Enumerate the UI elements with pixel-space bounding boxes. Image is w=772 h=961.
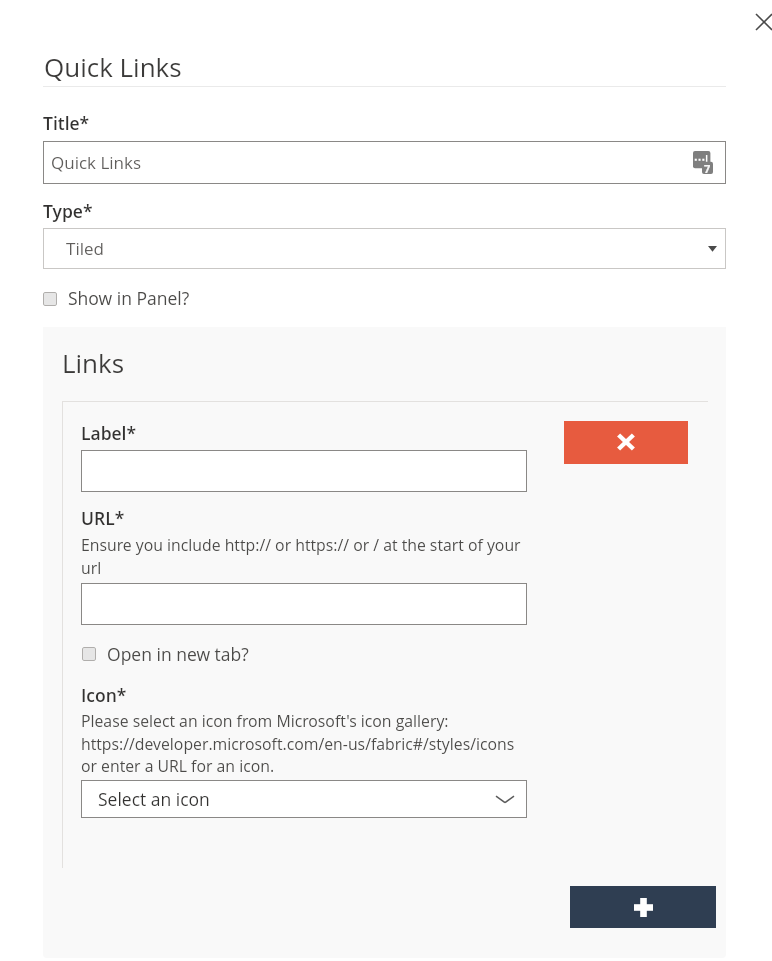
staticText: Select an icon [98, 787, 210, 811]
staticText: Links [62, 345, 125, 380]
staticText: Quick Links [51, 151, 141, 174]
staticText: Tiled [66, 237, 104, 260]
staticText: Please select an icon from Microsoft's i… [81, 710, 515, 776]
button[interactable] [81, 450, 527, 492]
button[interactable]: Tiled [43, 228, 726, 269]
staticText: Open in new tab? [107, 642, 249, 666]
staticText: Title* [43, 111, 90, 135]
staticText: Ensure you include http:// or https:// o… [81, 534, 521, 578]
staticText: Type* [43, 199, 93, 223]
staticText: Quick Links [44, 49, 182, 84]
button[interactable]: Quick Links [43, 141, 726, 184]
button[interactable] [82, 641, 302, 667]
staticText: Icon* [81, 683, 127, 707]
button[interactable]: Close [747, 5, 772, 38]
button[interactable] [81, 583, 527, 625]
staticText: URL* [81, 506, 125, 530]
staticText: Label* [81, 421, 137, 445]
button[interactable]: Remove link [564, 421, 688, 464]
button[interactable]: Add link [570, 886, 716, 928]
button[interactable] [43, 286, 263, 312]
staticText: 7 [704, 161, 711, 176]
staticText: Show in Panel? [68, 286, 190, 310]
button[interactable]: Select an icon [81, 780, 527, 818]
